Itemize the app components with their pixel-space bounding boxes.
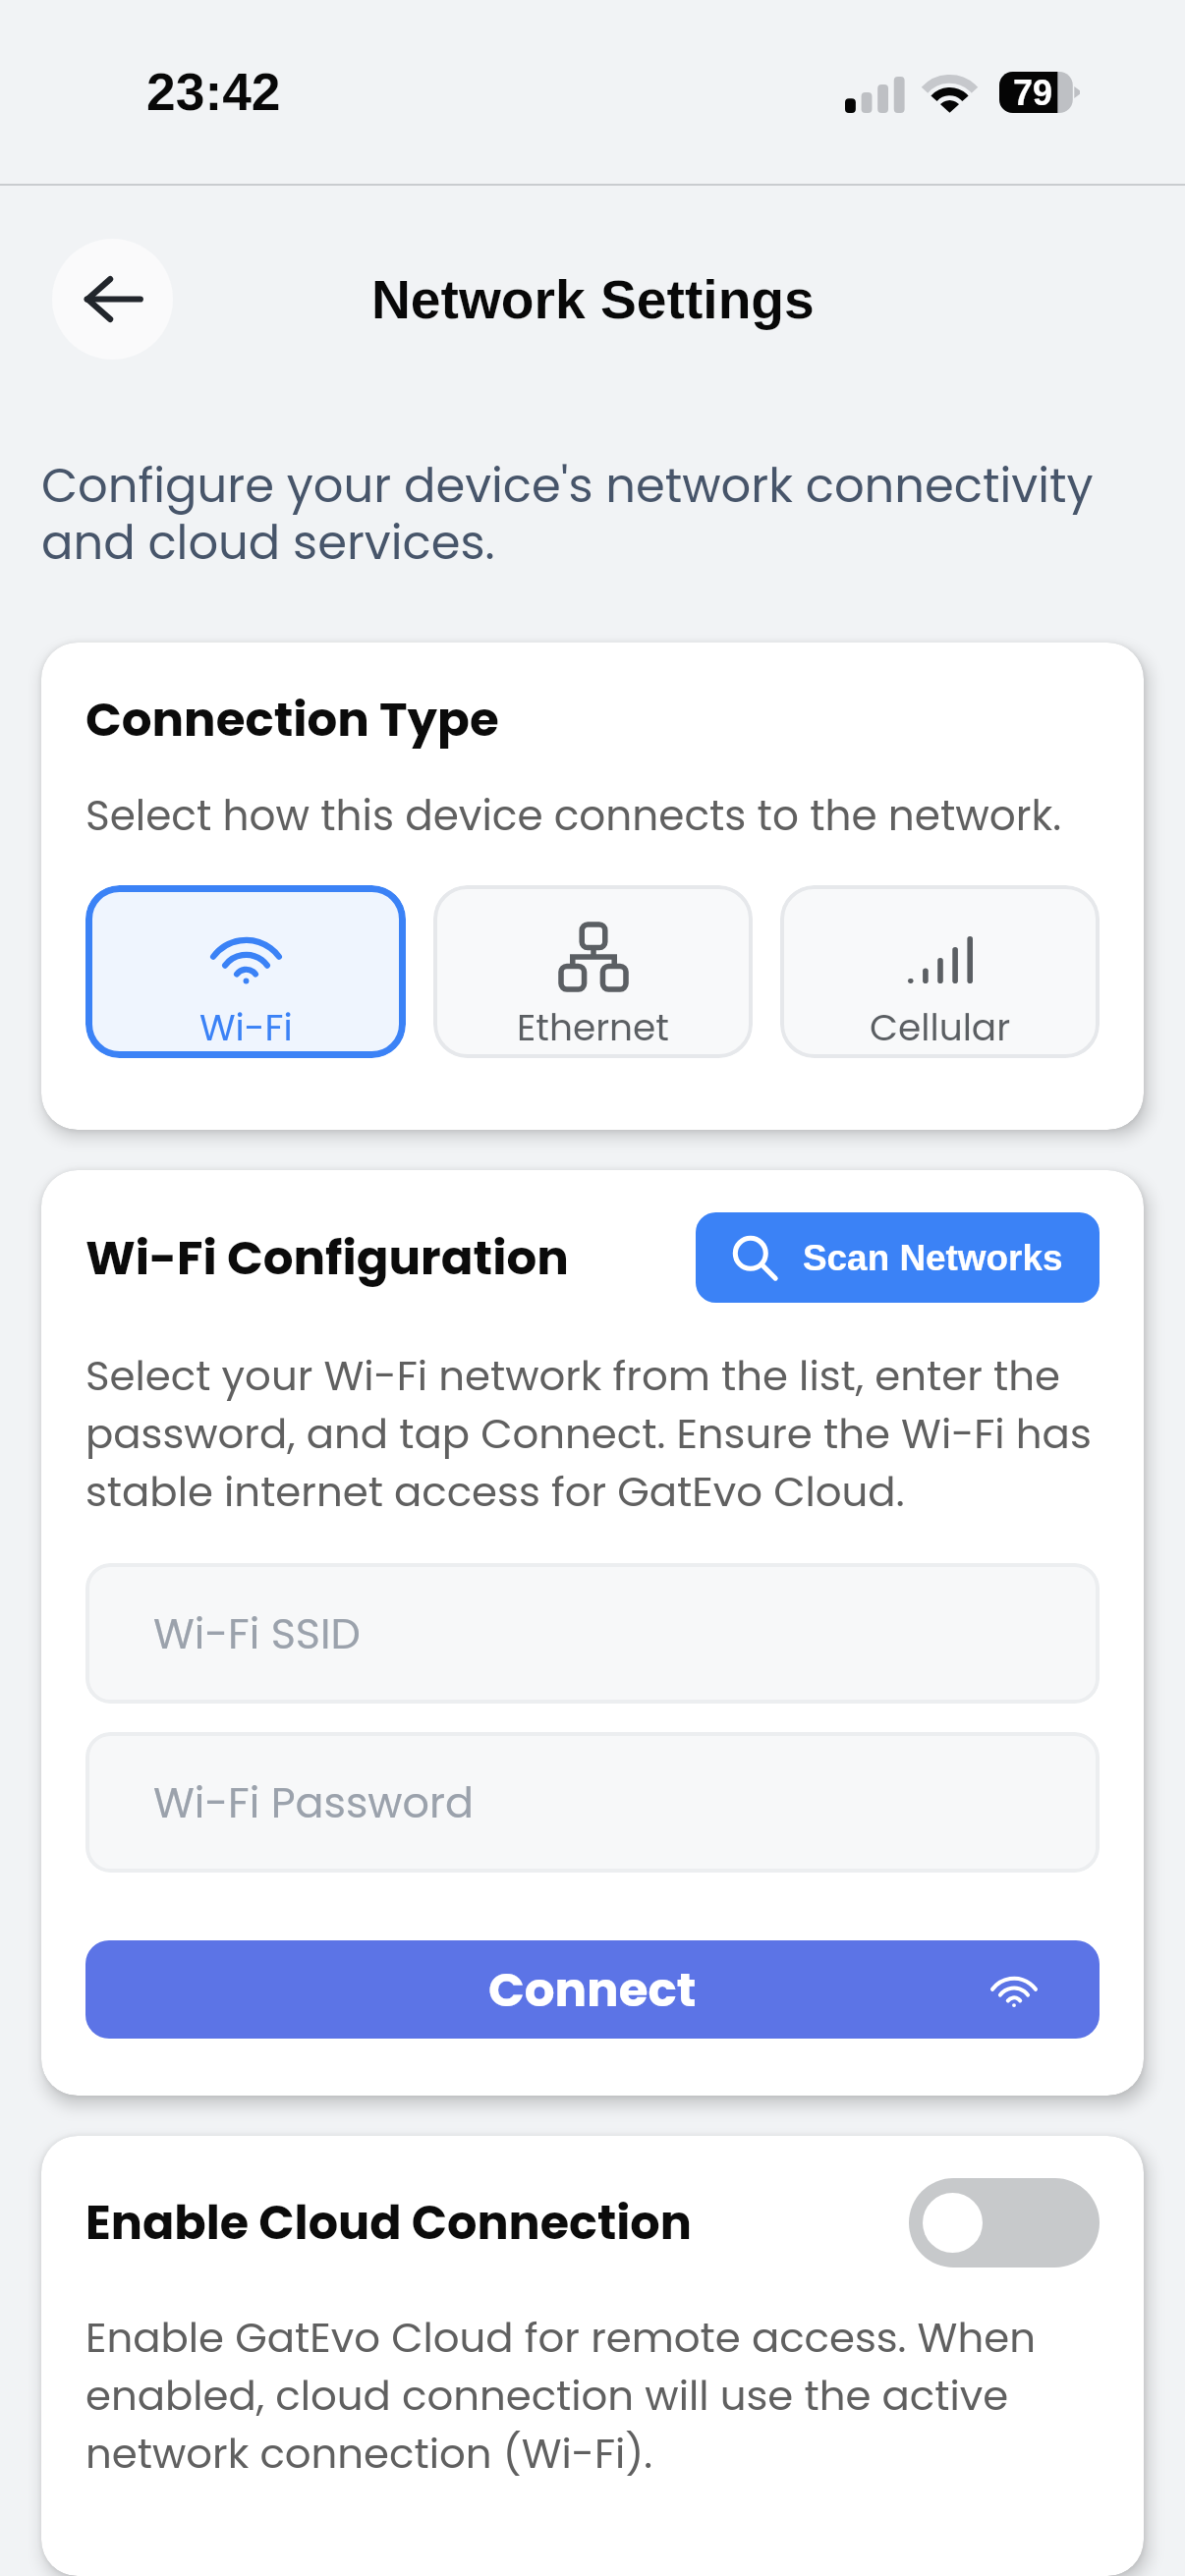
button[interactable]: Cellular [780, 885, 1100, 1058]
staticText: Wi-Fi Password [153, 1773, 474, 1832]
staticText: Network Settings [371, 269, 815, 330]
button[interactable]: Wi-Fi SSID [85, 1563, 1100, 1704]
staticText: Connection Type [85, 686, 499, 753]
staticText: 23:42 [146, 63, 281, 122]
button[interactable]: Ethernet [433, 885, 753, 1058]
button[interactable]: Scan Networks [696, 1212, 1100, 1303]
staticText: Wi-Fi [199, 1002, 293, 1054]
staticText: Cellular [870, 1002, 1011, 1054]
button[interactable]: Wi-Fi [85, 885, 406, 1058]
staticText: 79 [1013, 73, 1053, 112]
button[interactable]: Enable Cloud Connection [909, 2178, 1100, 2268]
staticText: Enable Cloud Connection [85, 2190, 692, 2256]
staticText: Select how this device connects to the n… [85, 787, 1062, 845]
staticText: Configure your device's network connecti… [41, 453, 1144, 576]
staticText: Connect [488, 1956, 697, 2023]
staticText: Ethernet [517, 1002, 670, 1054]
staticText: Wi-Fi Configuration [85, 1224, 569, 1291]
staticText: Wi-Fi SSID [153, 1604, 361, 1663]
staticText: Scan Networks [803, 1238, 1063, 1278]
button[interactable]: Connect [85, 1940, 1100, 2039]
button[interactable]: Wi-Fi Password [85, 1732, 1100, 1873]
staticText: Enable GatEvo Cloud for remote access. W… [85, 2309, 1100, 2483]
button[interactable]: Back [52, 239, 173, 360]
staticText: Select your Wi-Fi network from the list,… [85, 1347, 1100, 1521]
